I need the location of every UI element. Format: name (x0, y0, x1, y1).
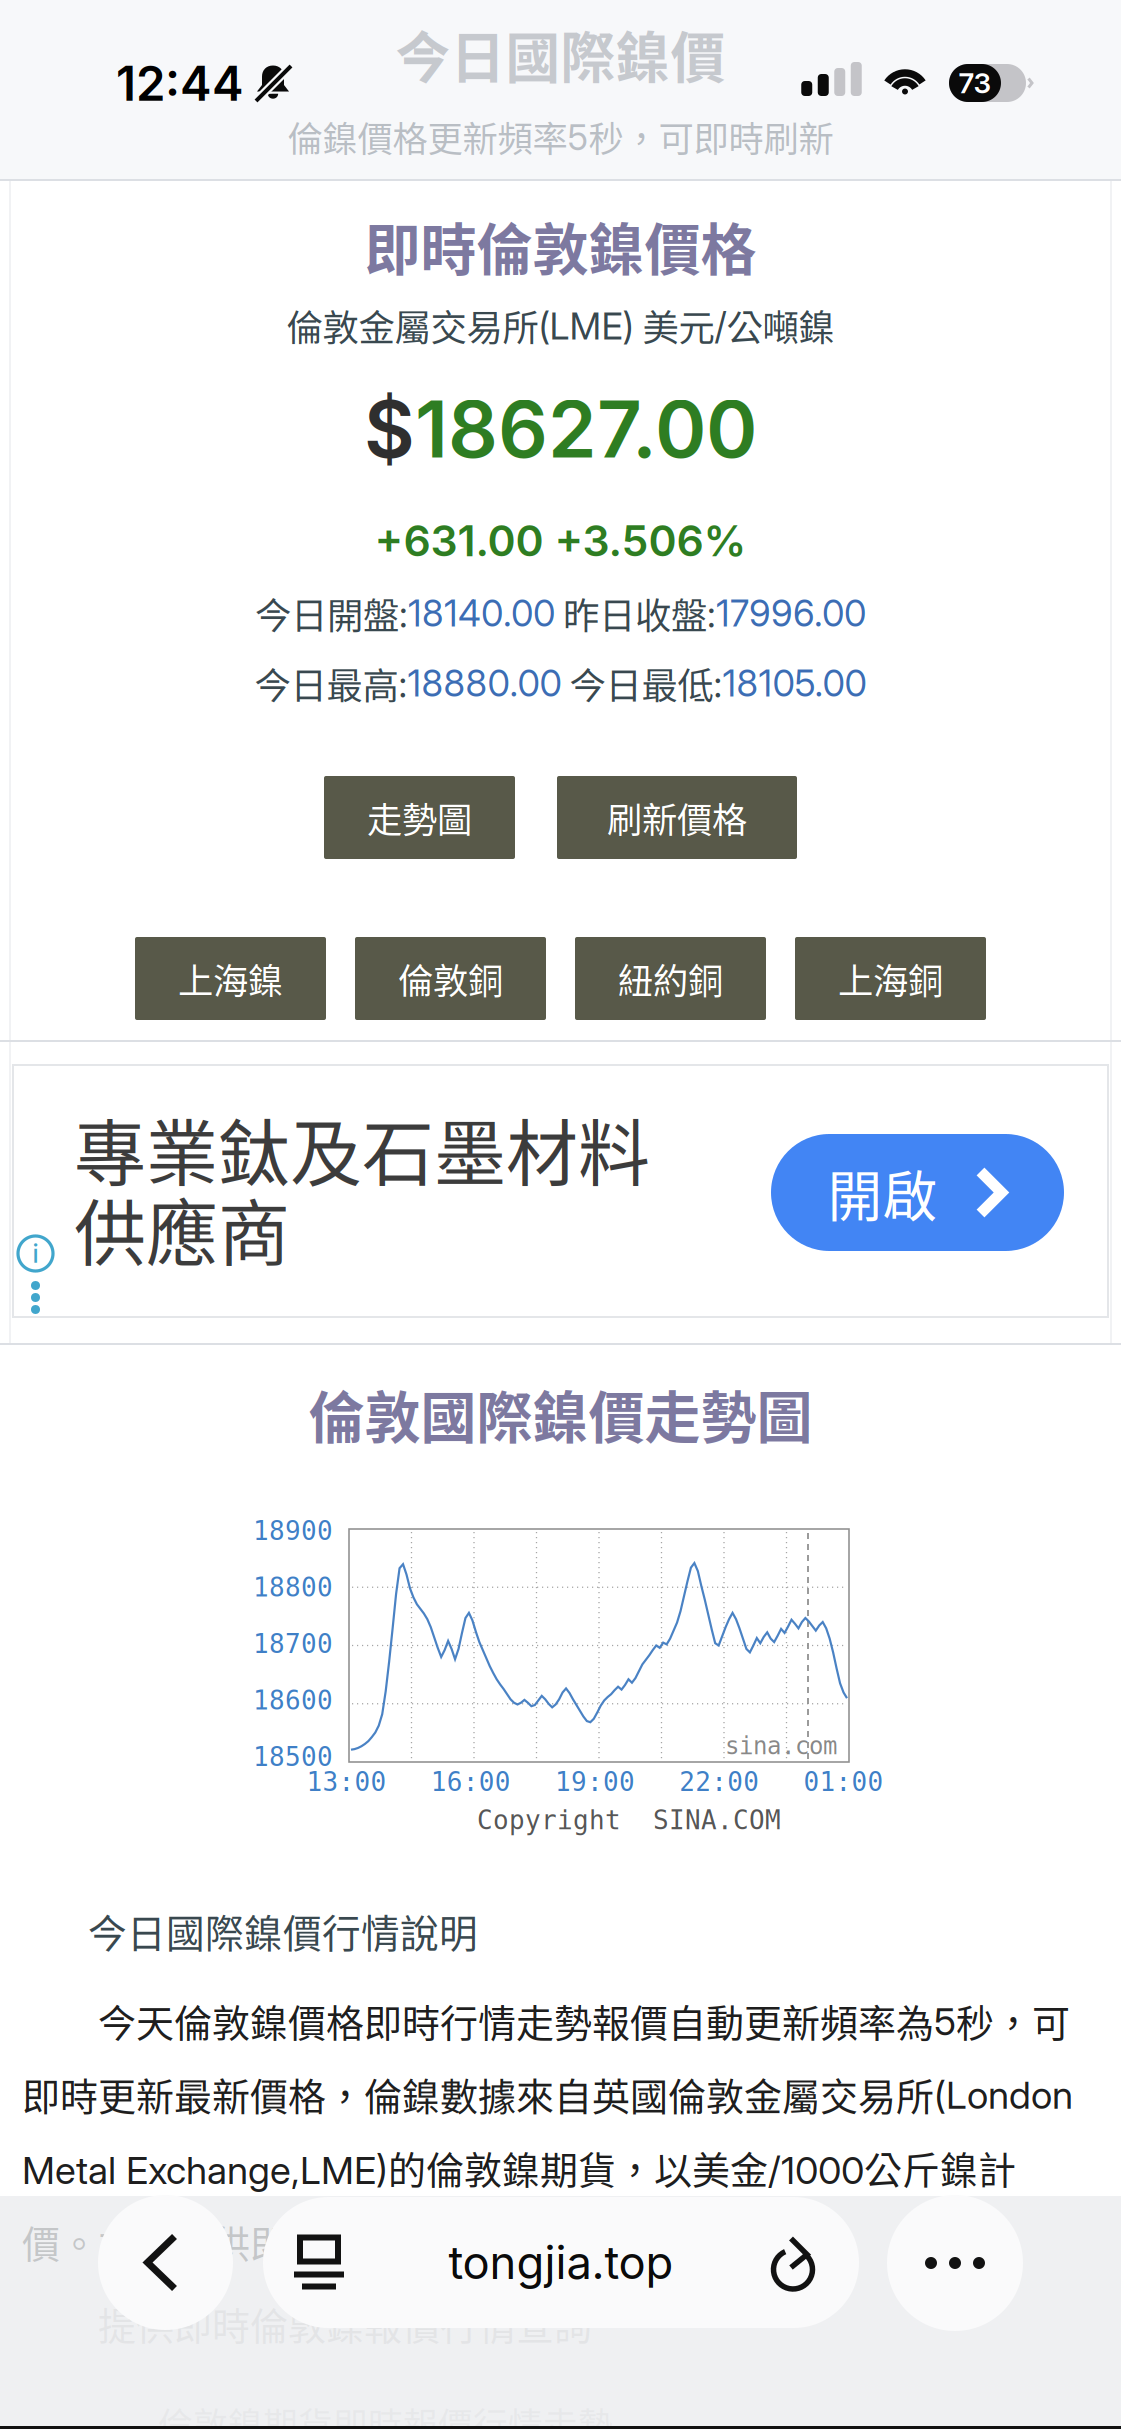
staticText: 22:00 (679, 1767, 759, 1797)
staticText: 18627.00 (415, 382, 757, 476)
staticText: 今日國際鎳價 (395, 14, 725, 93)
staticText: 01:00 (803, 1767, 883, 1797)
button[interactable]: More (887, 2195, 1023, 2331)
staticText: $ (364, 382, 415, 476)
button[interactable]: Reader (275, 2197, 363, 2328)
button[interactable]: 刷新價格 (557, 776, 797, 859)
staticText: 價。本站提供即時倫敦鎳報價行情查詢 (22, 2213, 668, 2268)
staticText: 今日開盤: (255, 587, 408, 640)
staticText: 價。本站提供即時倫敦鎳報價行情查詢 (22, 2214, 668, 2269)
staticText: 今天倫敦鎳價格即時行情走勢報價自動更新頻率為5秒，可 (22, 1993, 1070, 2048)
staticText: 倫敦國際鎳價走勢圖 (308, 1373, 812, 1454)
staticText: Copyright SINA.COM (477, 1805, 781, 1835)
staticText: 上海鎳 (178, 953, 283, 1004)
staticText: 19:00 (555, 1767, 635, 1797)
staticText: Metal Exchange,LME)的倫敦鎳期貨，以美金/1000公斤鎳計 (22, 2140, 1016, 2195)
button[interactable]: 開啟 (771, 1134, 1064, 1251)
staticText: tongjia.top (448, 2235, 673, 2290)
button[interactable]: 倫敦銅 (355, 937, 546, 1020)
staticText: 倫敦金屬交易所(LME) 美元/公噸鎳 (286, 299, 834, 352)
staticText: 今日國際鎳價行情說明 (88, 1903, 478, 1959)
staticText: 倫敦鎳期貨即時報價行情走勢 (88, 2398, 613, 2429)
staticText: 73 (958, 66, 991, 100)
staticText: 供應商 (74, 1176, 290, 1280)
staticText: 18105.00 (722, 661, 866, 705)
staticText: 18880.00 (407, 661, 561, 705)
staticText: 紐約銅 (618, 953, 723, 1004)
staticText: 上海銅 (838, 953, 943, 1004)
staticText: 刷新價格 (607, 792, 747, 843)
staticText: 13:00 (306, 1767, 386, 1797)
button[interactable]: 上海鎳 (135, 937, 326, 1020)
staticText: 走勢圖 (367, 792, 472, 843)
staticText: 12:44 (116, 55, 244, 112)
button[interactable]: 走勢圖 (324, 776, 515, 859)
button[interactable]: Reload (751, 2197, 839, 2328)
staticText: 16:00 (431, 1767, 511, 1797)
staticText: 今日最高: (254, 657, 407, 710)
staticText: 18900 (253, 1516, 333, 1546)
staticText: 專業鈦及石墨材料 (74, 1096, 650, 1200)
staticText: 即時倫敦鎳價格 (364, 205, 756, 286)
staticText: 昨日收盤: (555, 587, 716, 640)
staticText: 18700 (253, 1629, 333, 1659)
button[interactable]: Back (98, 2195, 233, 2330)
staticText: 18600 (253, 1685, 333, 1716)
staticText: 即時更新最新價格，倫鎳數據來自英國倫敦金屬交易所(London (22, 2066, 1073, 2121)
staticText: 18500 (253, 1742, 333, 1772)
staticText: +631.00 +3.506% (374, 515, 746, 567)
button[interactable]: 紐約銅 (575, 937, 766, 1020)
staticText: 18800 (253, 1572, 333, 1603)
staticText: 倫鎳價格更新頻率5秒，可即時刷新 (287, 111, 833, 162)
staticText: 17996.00 (716, 591, 866, 635)
staticText: i (32, 1238, 38, 1269)
button[interactable]: 上海銅 (795, 937, 986, 1020)
staticText: 倫敦銅 (398, 953, 503, 1004)
staticText: 18140.00 (408, 591, 555, 635)
staticText: 提供即時倫敦鎳報價行情查詢 (22, 2296, 592, 2351)
staticText: 開啟 (827, 1153, 937, 1232)
staticText: sina.com (725, 1732, 837, 1760)
staticText: 今日最低: (561, 657, 722, 710)
